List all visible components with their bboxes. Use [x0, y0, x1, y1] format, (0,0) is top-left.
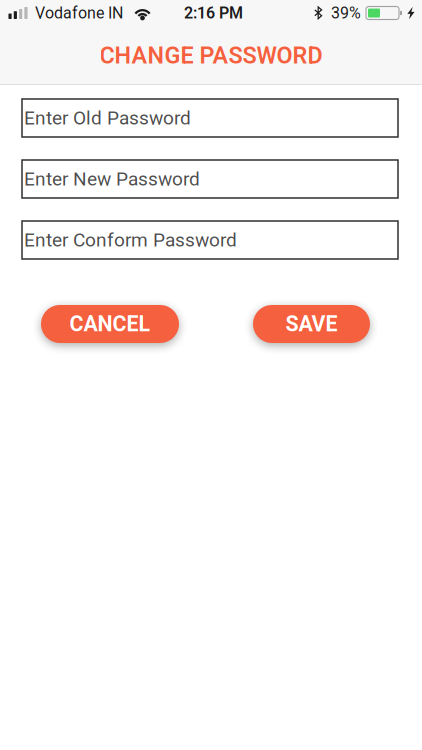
button[interactable]: Enter Old Password: [22, 99, 398, 137]
staticText: Enter Conform Password: [24, 229, 237, 251]
staticText: SAVE: [285, 311, 337, 336]
staticText: CHANGE PASSWORD: [99, 42, 322, 69]
staticText: 2:16 PM: [184, 4, 243, 22]
staticText: Enter Old Password: [24, 107, 191, 129]
staticText: Enter New Password: [24, 168, 200, 190]
staticText: Vodafone IN: [35, 4, 123, 22]
staticText: CANCEL: [69, 311, 150, 336]
staticText: 39%: [331, 4, 361, 22]
button[interactable]: Enter New Password: [22, 160, 398, 198]
button[interactable]: CANCEL: [41, 305, 179, 343]
button[interactable]: Enter Conform Password: [22, 221, 398, 259]
button[interactable]: SAVE: [253, 305, 370, 343]
